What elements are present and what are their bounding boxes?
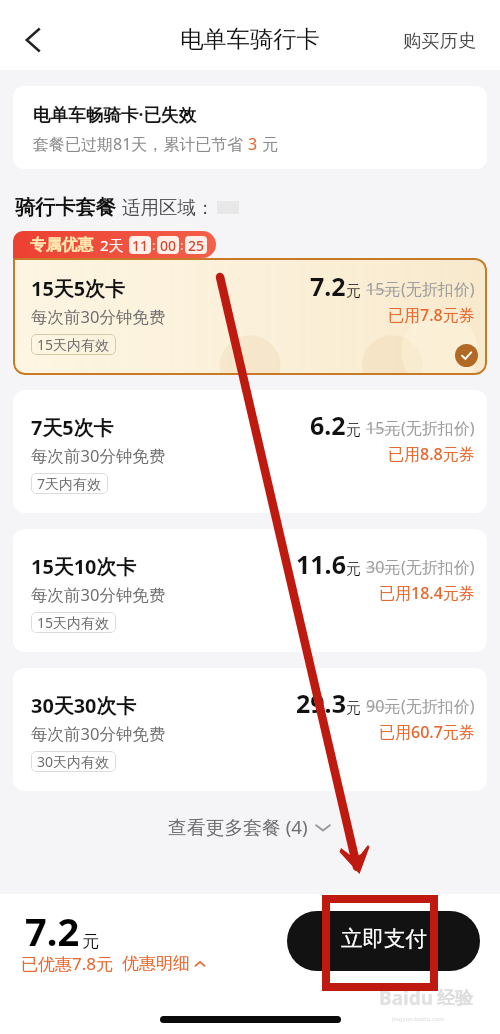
button[interactable]: 15天5次卡 — [13, 258, 487, 375]
staticText: 7.2 — [25, 905, 80, 957]
staticText: 骑行卡套餐 — [15, 195, 116, 220]
staticText: (无折扣价) — [401, 278, 475, 300]
button[interactable]: Back — [9, 16, 57, 64]
staticText: 7.2 — [310, 269, 346, 303]
staticText: 优惠明细 — [122, 953, 190, 974]
staticText: 查看更多套餐 (4) — [168, 814, 308, 840]
staticText: 电单车骑行卡 — [180, 25, 320, 54]
staticText: 经验 — [437, 987, 473, 1010]
staticText: 每次前30分钟免费 — [31, 722, 166, 745]
staticText: 15元 — [366, 417, 401, 439]
staticText: 元 — [346, 699, 361, 718]
staticText: 30天内有效 — [37, 752, 110, 771]
staticText: 适用区域： — [122, 196, 215, 219]
staticText: (无折扣价) — [401, 695, 475, 717]
staticText: 电单车畅骑卡·已失效 — [33, 102, 197, 126]
staticText: 元 — [346, 282, 361, 301]
staticText: 15天5次卡 — [31, 275, 125, 302]
staticText: 已用60.7元券 — [379, 721, 475, 743]
staticText: 已用18.4元券 — [379, 582, 475, 604]
button[interactable]: 15天10次卡 — [13, 529, 487, 652]
staticText: 30天30次卡 — [31, 692, 137, 719]
staticText: 专属优惠 — [30, 235, 94, 255]
staticText: 15天10次卡 — [31, 553, 137, 580]
button[interactable]: 查看更多套餐 (4) — [0, 805, 500, 849]
staticText: (无折扣价) — [401, 417, 475, 439]
staticText: 套餐已过期81天，累计已节省 — [33, 133, 248, 155]
staticText: 已优惠7.8元 — [21, 952, 114, 975]
staticText: Baidu — [379, 985, 434, 1011]
staticText: 3 — [248, 133, 258, 155]
staticText: 90元 — [366, 695, 401, 717]
button[interactable]: 7天5次卡 — [13, 390, 487, 513]
staticText: 30元 — [366, 556, 401, 578]
staticText: 6.2 — [310, 408, 346, 442]
staticText: 11 — [132, 236, 149, 254]
staticText: : — [180, 236, 184, 254]
staticText: 每次前30分钟免费 — [31, 444, 166, 467]
button[interactable]: 优惠明细 — [122, 953, 206, 974]
button[interactable]: 电单车畅骑卡·已失效 — [13, 86, 487, 169]
staticText: 购买历史 — [403, 29, 477, 52]
button[interactable]: 立即支付 — [287, 911, 480, 971]
staticText: (无折扣价) — [401, 556, 475, 578]
button[interactable]: 购买历史 — [391, 14, 500, 57]
staticText: 25 — [188, 236, 205, 254]
staticText: jingyan.baidu.com — [392, 1015, 444, 1022]
staticText: 每次前30分钟免费 — [31, 305, 166, 328]
staticText: 29.3 — [296, 686, 346, 720]
staticText: 15天内有效 — [37, 613, 110, 632]
staticText: 已用7.8元券 — [388, 304, 475, 326]
staticText: : — [152, 236, 156, 254]
staticText: 立即支付 — [341, 925, 427, 952]
staticText: 元 — [258, 133, 279, 155]
staticText: 2天 — [100, 235, 124, 255]
staticText: 元 — [346, 421, 361, 440]
staticText: 7天内有效 — [37, 474, 102, 493]
staticText: 11.6 — [296, 547, 346, 581]
staticText: 15天内有效 — [37, 335, 110, 354]
staticText: 元 — [82, 931, 99, 952]
staticText: 元 — [346, 560, 361, 579]
button[interactable]: 30天30次卡 — [13, 668, 487, 791]
staticText: 15元 — [366, 278, 401, 300]
staticText: 00 — [160, 236, 177, 254]
staticText: 7天5次卡 — [31, 414, 114, 441]
staticText: 每次前30分钟免费 — [31, 583, 166, 606]
staticText: 已用8.8元券 — [388, 443, 475, 465]
